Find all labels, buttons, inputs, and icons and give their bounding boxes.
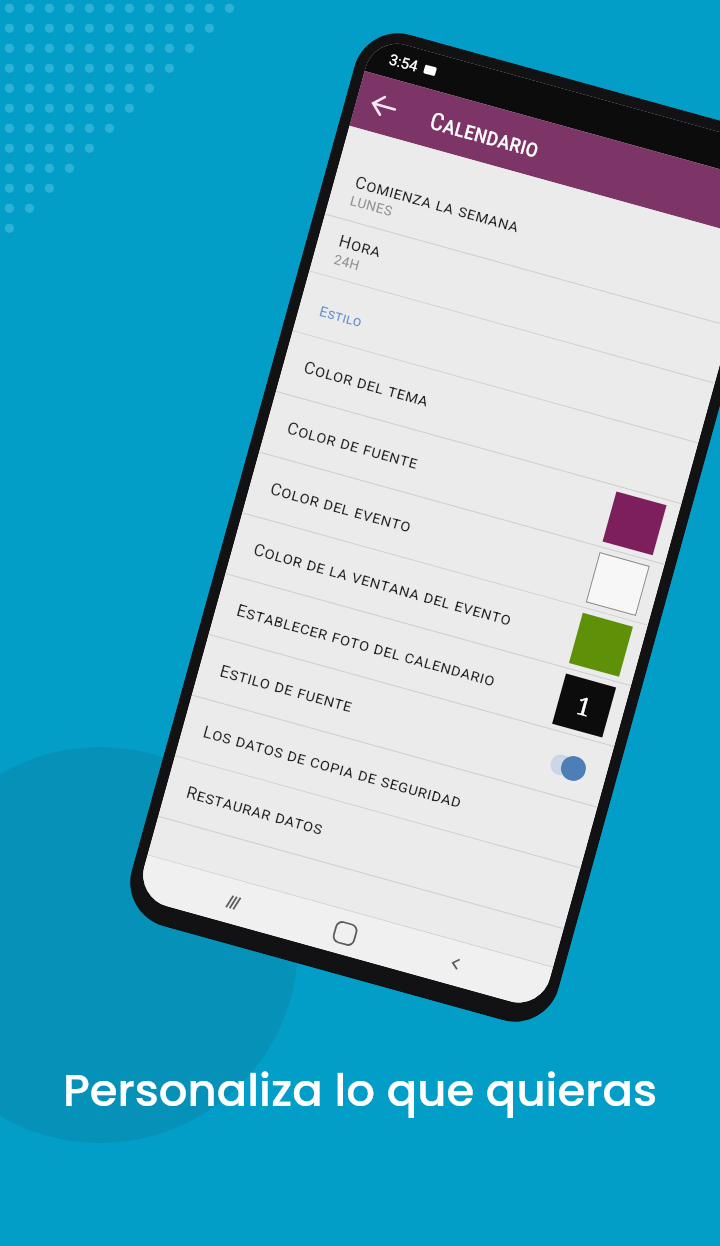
staticText: 1 bbox=[573, 687, 595, 724]
staticText: Calendario bbox=[427, 107, 542, 164]
staticText: Color del tema bbox=[302, 357, 431, 411]
staticText: Color del evento bbox=[268, 478, 595, 587]
button[interactable]: Los datos de copia de seguridad bbox=[175, 695, 597, 867]
button[interactable]: Home bbox=[320, 908, 369, 957]
staticText: 24H bbox=[332, 251, 362, 273]
staticText: Estilo de fuente bbox=[218, 660, 546, 769]
staticText: LUNES bbox=[348, 192, 395, 219]
button[interactable]: Restaurar datos bbox=[158, 756, 580, 928]
button[interactable]: Comienza la semana bbox=[325, 155, 720, 326]
staticText: Establecer foto del calendario bbox=[234, 600, 562, 708]
button[interactable]: Back bbox=[357, 79, 411, 133]
staticText: Hora bbox=[337, 231, 383, 261]
staticText: Estilo bbox=[318, 303, 364, 330]
staticText: Color de fuente bbox=[285, 418, 612, 526]
staticText: Color de la ventana del evento bbox=[251, 539, 578, 647]
button[interactable]: Color del tema bbox=[276, 331, 698, 503]
staticText: Restaurar datos bbox=[184, 782, 326, 839]
button[interactable]: Recent apps bbox=[208, 877, 257, 926]
button[interactable]: Hora bbox=[309, 214, 720, 383]
staticText: Personaliza lo que quieras bbox=[0, 1059, 720, 1122]
button[interactable]: Color de fuente bbox=[259, 392, 681, 564]
button[interactable]: Back bbox=[431, 939, 480, 988]
button[interactable]: Establecer foto del calendario bbox=[209, 574, 631, 746]
button[interactable]: Color del evento bbox=[242, 452, 665, 625]
staticText: Los datos de copia de seguridad bbox=[201, 721, 464, 812]
button[interactable]: Estilo de fuente bbox=[192, 635, 614, 807]
button[interactable]: Color de la ventana del evento bbox=[225, 513, 648, 685]
staticText: Comienza la semana bbox=[353, 172, 522, 236]
staticText: 3:54 bbox=[387, 50, 420, 76]
